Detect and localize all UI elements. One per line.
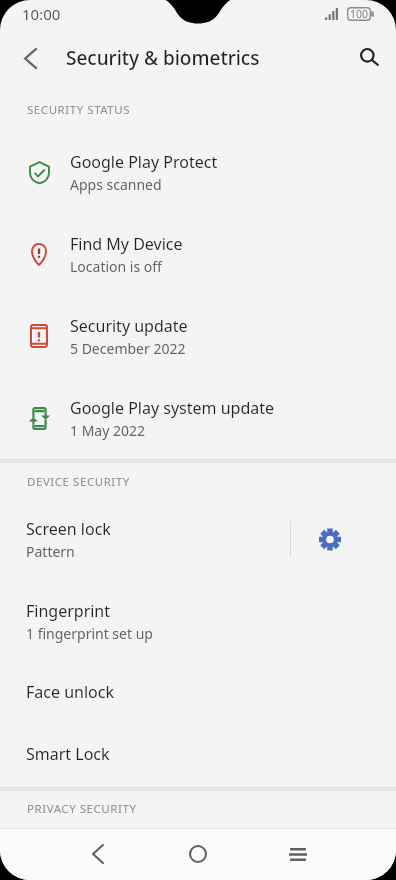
staticText: Location is off xyxy=(70,257,162,276)
button[interactable]: Face unlock xyxy=(0,661,396,723)
staticText: Security update xyxy=(70,315,188,337)
staticText: Google Play system update xyxy=(70,397,275,419)
staticText: Google Play Protect xyxy=(70,151,218,173)
staticText: 1 fingerprint set up xyxy=(26,624,153,643)
staticText: Screen lock xyxy=(26,518,111,540)
staticText: 100 xyxy=(350,7,369,21)
button[interactable]: Security update xyxy=(0,295,396,377)
button[interactable]: Screen lock xyxy=(0,498,290,580)
staticText: Pattern xyxy=(26,542,75,561)
staticText: SECURITY STATUS xyxy=(27,102,131,118)
button[interactable]: Home xyxy=(174,830,222,878)
staticText: 1 May 2022 xyxy=(70,421,146,440)
button[interactable]: Search xyxy=(345,33,393,81)
button[interactable]: Back xyxy=(74,830,122,878)
button[interactable]: Google Play system update xyxy=(0,377,396,459)
staticText: Security & biometrics xyxy=(66,45,260,71)
staticText: PRIVACY SECURITY xyxy=(27,801,137,817)
button[interactable]: Smart Lock xyxy=(0,723,396,785)
button[interactable]: Screen lock settings xyxy=(291,498,396,580)
staticText: Find My Device xyxy=(70,233,183,255)
button[interactable]: Fingerprint xyxy=(0,580,396,662)
staticText: 10:00 xyxy=(22,4,61,24)
staticText: Face unlock xyxy=(26,681,114,703)
staticText: 5 December 2022 xyxy=(70,339,186,358)
staticText: Apps scanned xyxy=(70,175,162,194)
button[interactable]: Find My Device xyxy=(0,213,396,295)
staticText: Smart Lock xyxy=(26,743,110,765)
button[interactable]: Google Play Protect xyxy=(0,131,396,213)
button[interactable]: Navigate up xyxy=(6,34,54,82)
staticText: DEVICE SECURITY xyxy=(27,474,130,490)
button[interactable]: Recent apps xyxy=(274,830,322,878)
staticText: Fingerprint xyxy=(26,600,111,622)
